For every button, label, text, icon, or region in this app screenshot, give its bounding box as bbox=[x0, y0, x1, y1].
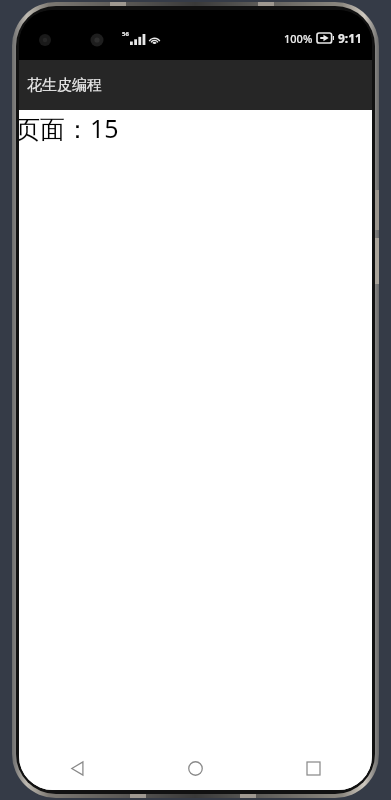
button[interactable]: Home bbox=[136, 746, 254, 790]
staticText: 页面：15 bbox=[19, 111, 119, 145]
button[interactable]: 花生皮编程 bbox=[19, 60, 372, 110]
button[interactable]: Recents bbox=[254, 746, 372, 790]
staticText: 100% bbox=[284, 31, 313, 46]
staticText: 9:11 bbox=[338, 30, 362, 46]
button[interactable]: Back bbox=[19, 746, 136, 790]
staticText: 花生皮编程 bbox=[27, 76, 102, 95]
staticText: 56 bbox=[122, 30, 129, 38]
